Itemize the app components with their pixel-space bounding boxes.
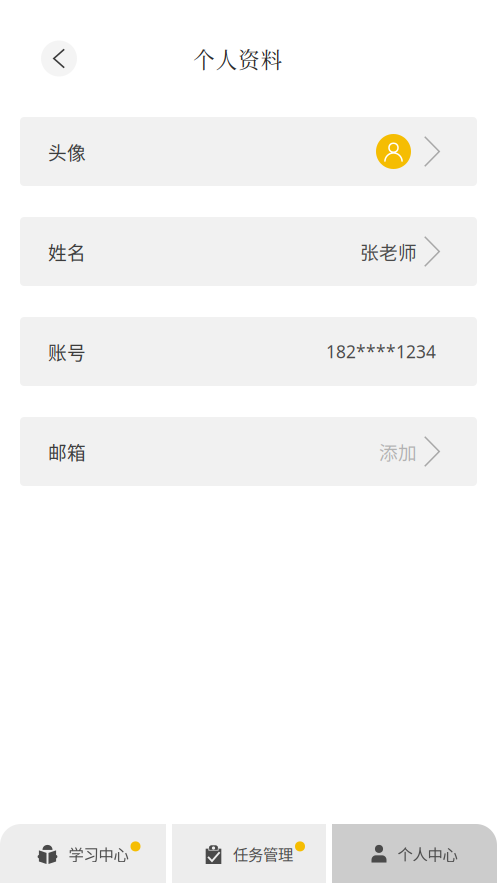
staticText: 学习中心: [68, 842, 128, 865]
button[interactable]: 学习中心: [0, 824, 166, 883]
staticText: 头像: [48, 138, 86, 165]
button[interactable]: 姓名: [20, 217, 477, 286]
button[interactable]: Back: [41, 40, 77, 76]
button[interactable]: 头像: [20, 117, 477, 186]
staticText: 账号: [48, 338, 86, 365]
button[interactable]: 账号: [20, 317, 477, 386]
staticText: 182****1234: [326, 340, 436, 363]
staticText: 个人中心: [397, 842, 457, 865]
button[interactable]: 邮箱: [20, 417, 477, 486]
staticText: 任务管理: [233, 842, 293, 865]
staticText: 邮箱: [48, 438, 86, 465]
button[interactable]: 个人中心: [332, 824, 497, 883]
button[interactable]: 任务管理: [172, 824, 326, 883]
staticText: 添加: [379, 438, 417, 465]
staticText: 张老师: [360, 238, 417, 265]
staticText: 姓名: [48, 238, 86, 265]
staticText: 个人资料: [193, 43, 282, 74]
